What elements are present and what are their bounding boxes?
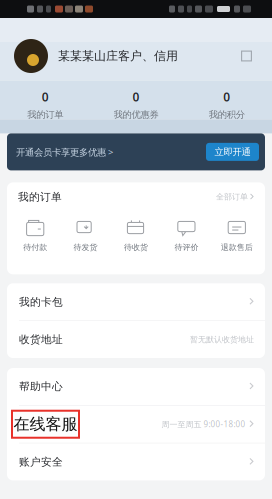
- button[interactable]: 0: [91, 89, 181, 120]
- staticText: 我的订单: [18, 190, 62, 203]
- button[interactable]: 收货地址: [7, 321, 265, 358]
- staticText: 退款售后: [221, 242, 253, 252]
- button[interactable]: 0: [181, 89, 272, 120]
- staticText: 在线客服: [13, 414, 77, 434]
- button[interactable]: 0: [0, 89, 91, 120]
- button[interactable]: Settings: [237, 46, 256, 65]
- button[interactable]: [7, 406, 265, 443]
- staticText: 我的订单: [27, 109, 63, 120]
- staticText: 0: [42, 89, 49, 105]
- staticText: 待发货: [74, 242, 98, 252]
- staticText: 账户安全: [19, 455, 63, 468]
- staticText: 某某某山庄客户、信用: [58, 49, 178, 63]
- staticText: 我的积分: [209, 109, 245, 120]
- button[interactable]: 待评价: [161, 219, 212, 252]
- button[interactable]: 我的卡包: [7, 283, 265, 320]
- staticText: 0: [223, 89, 230, 105]
- button[interactable]: 待收货: [111, 219, 161, 252]
- button[interactable]: 退款售后: [212, 219, 262, 252]
- staticText: 帮助中心: [19, 380, 63, 393]
- staticText: 我的卡包: [19, 295, 63, 308]
- staticText: 暂无默认收货地址: [190, 335, 254, 344]
- staticText: 待付款: [23, 242, 47, 252]
- staticText: 我的优惠券: [113, 109, 158, 120]
- button[interactable]: 账户安全: [7, 443, 265, 480]
- staticText: 立即开通: [214, 146, 250, 158]
- staticText: 全部订单: [216, 192, 248, 202]
- button[interactable]: 帮助中心: [7, 368, 265, 405]
- button[interactable]: 待付款: [10, 219, 60, 252]
- staticText: 待收货: [124, 242, 148, 252]
- staticText: 收货地址: [19, 333, 63, 346]
- staticText: 周一至周五 9:00-18:00: [161, 419, 245, 429]
- button[interactable]: 待发货: [60, 219, 111, 252]
- staticText: 0: [132, 89, 139, 105]
- button[interactable]: 全部订单: [216, 192, 254, 202]
- staticText: 开通会员卡享更多优惠 >: [16, 146, 113, 158]
- button[interactable]: 立即开通: [206, 143, 259, 161]
- staticText: 待评价: [174, 242, 198, 252]
